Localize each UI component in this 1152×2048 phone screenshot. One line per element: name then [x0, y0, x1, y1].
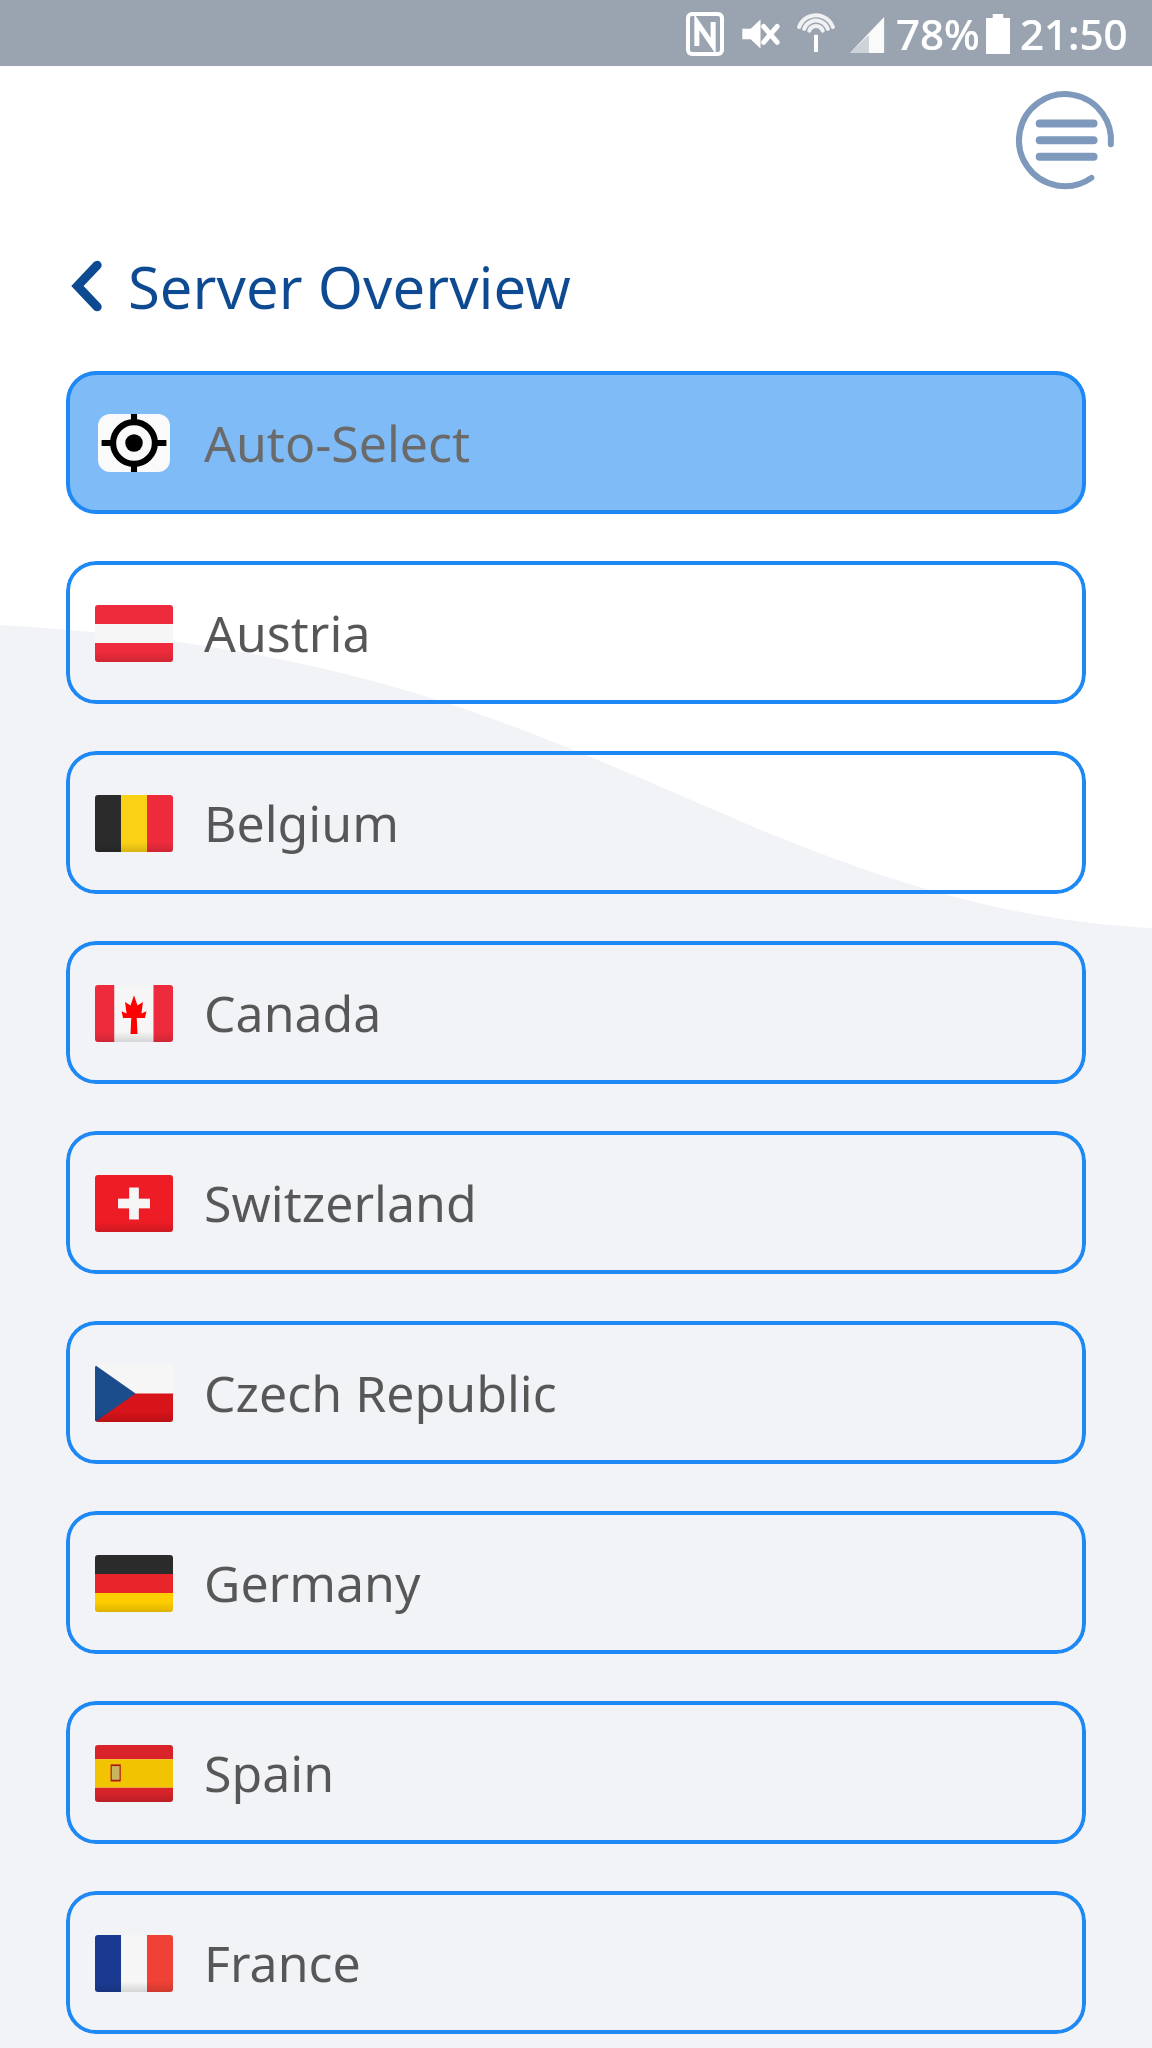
staticText: Austria: [204, 599, 371, 667]
staticText: Switzerland: [204, 1169, 477, 1237]
button[interactable]: Canada: [66, 941, 1086, 1084]
button[interactable]: Server Overview: [0, 221, 1152, 351]
button[interactable]: Belgium: [66, 751, 1086, 894]
button[interactable]: Switzerland: [66, 1131, 1086, 1274]
staticText: France: [204, 1929, 361, 1997]
button[interactable]: Germany: [66, 1511, 1086, 1654]
staticText: 78%: [896, 5, 980, 62]
staticText: Germany: [204, 1549, 421, 1617]
staticText: Auto-Select: [204, 409, 471, 477]
button[interactable]: France: [66, 1891, 1086, 2034]
button[interactable]: Menu: [1006, 85, 1124, 203]
button[interactable]: Auto-Select: [66, 371, 1086, 514]
button[interactable]: Spain: [66, 1701, 1086, 1844]
staticText: Canada: [204, 979, 382, 1047]
button[interactable]: Czech Republic: [66, 1321, 1086, 1464]
staticText: Czech Republic: [204, 1359, 557, 1427]
staticText: Belgium: [204, 789, 399, 857]
button[interactable]: Austria: [66, 561, 1086, 704]
staticText: 21:50: [1020, 5, 1128, 62]
staticText: Spain: [204, 1739, 335, 1807]
staticText: Server Overview: [128, 247, 571, 326]
